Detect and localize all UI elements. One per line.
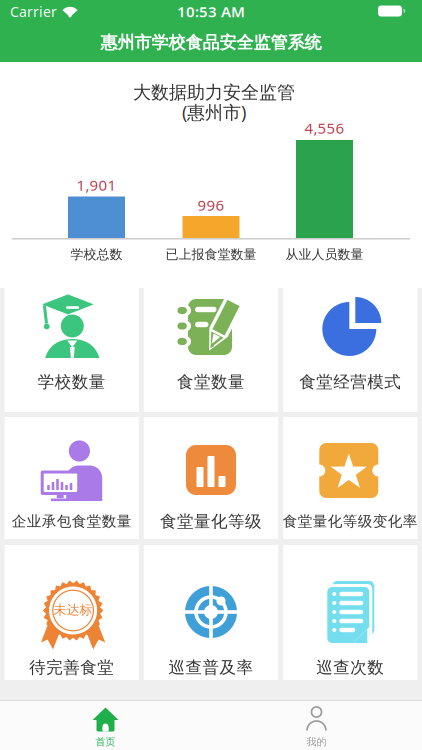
- staticText: 惠州市学校食品安全监管系统: [100, 32, 321, 53]
- staticText: 大数据助力安全监管: [133, 81, 295, 103]
- staticText: 食堂量化等级: [160, 511, 262, 532]
- staticText: 学校总数: [70, 246, 122, 262]
- staticText: 食堂数量: [177, 372, 245, 392]
- button[interactable]: 企业承包食堂数量: [4, 417, 139, 539]
- staticText: 待完善食堂: [29, 657, 114, 678]
- staticText: 学校数量: [38, 372, 106, 392]
- staticText: 1,901: [76, 175, 116, 195]
- staticText: 4,556: [304, 118, 344, 138]
- staticText: 我的: [306, 736, 326, 748]
- staticText: 从业人员数量: [285, 246, 363, 262]
- staticText: 食堂经营模式: [299, 372, 401, 392]
- button[interactable]: 食堂经营模式: [283, 288, 417, 412]
- button[interactable]: 食堂数量: [144, 288, 278, 412]
- button[interactable]: 首页: [0, 701, 211, 750]
- staticText: 巡查次数: [316, 657, 384, 678]
- staticText: 996: [197, 195, 224, 215]
- staticText: 企业承包食堂数量: [12, 512, 132, 530]
- button[interactable]: 学校数量: [4, 288, 139, 412]
- button[interactable]: 我的: [211, 701, 422, 750]
- button[interactable]: 未达标: [4, 545, 139, 680]
- button[interactable]: 食堂量化等级变化率: [283, 417, 417, 539]
- staticText: 首页: [95, 736, 115, 748]
- staticText: 10:53 AM: [177, 1, 245, 21]
- button[interactable]: 巡查次数: [283, 545, 417, 680]
- button[interactable]: 巡查普及率: [144, 545, 278, 680]
- staticText: 未达标: [54, 602, 93, 618]
- staticText: Carrier: [10, 2, 57, 21]
- staticText: 已上报食堂数量: [165, 246, 256, 262]
- button[interactable]: 食堂量化等级: [144, 417, 278, 539]
- staticText: 食堂量化等级变化率: [283, 512, 418, 530]
- staticText: 巡查普及率: [168, 657, 253, 678]
- staticText: (惠州市): [182, 100, 246, 124]
